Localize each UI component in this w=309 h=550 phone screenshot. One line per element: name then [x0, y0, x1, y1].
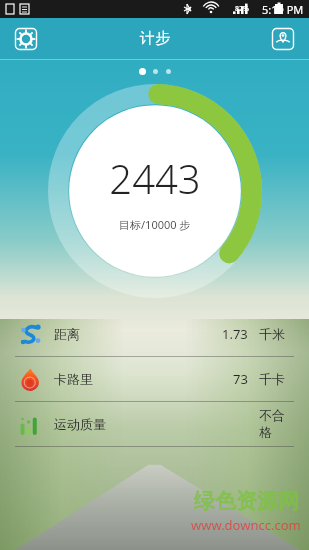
staticText: 目标/10000 步 [119, 217, 191, 232]
staticText: 距离 [54, 326, 80, 342]
staticText: 不合格 [259, 407, 293, 441]
staticText: 千米 [259, 326, 285, 342]
staticText: 73 [233, 370, 248, 388]
staticText: 卡路里 [54, 371, 93, 387]
staticText: 千卡 [259, 371, 285, 387]
button[interactable]: Settings [12, 25, 40, 53]
staticText: 2443 [109, 151, 201, 205]
button[interactable]: 卡路里 [13, 357, 296, 401]
staticText: 计步 [140, 29, 170, 48]
staticText: www.downcc.com [191, 516, 301, 534]
button[interactable]: 距离 [13, 312, 296, 356]
staticText: 82% [235, 4, 249, 14]
staticText: 运动质量 [54, 416, 106, 432]
staticText: 1.73 [222, 325, 248, 343]
button[interactable]: 运动质量 [13, 402, 296, 446]
button[interactable]: Map location [269, 25, 297, 53]
staticText: 绿色资源网 [194, 488, 299, 514]
staticText: 5:19 PM [262, 2, 304, 17]
